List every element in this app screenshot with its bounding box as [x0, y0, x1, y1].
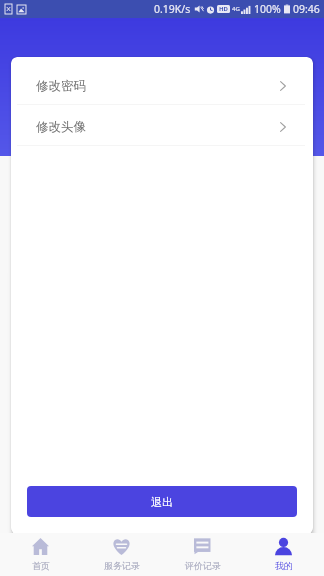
- staticText: 09:46: [293, 2, 320, 16]
- button[interactable]: 修改头像: [11, 105, 313, 145]
- staticText: 修改头像: [36, 119, 86, 135]
- button[interactable]: 修改密码: [11, 64, 313, 104]
- button[interactable]: Mine: [243, 533, 324, 576]
- staticText: HD: [219, 5, 228, 13]
- staticText: 退出: [151, 495, 173, 509]
- staticText: 4G: [232, 5, 240, 13]
- staticText: 修改密码: [36, 78, 86, 94]
- button[interactable]: 退出: [27, 486, 297, 517]
- button[interactable]: Home: [0, 533, 81, 576]
- staticText: 服务记录: [104, 560, 140, 571]
- other: Review records: [194, 538, 211, 555]
- staticText: 评价记录: [185, 560, 221, 571]
- other: Mine: [275, 538, 292, 555]
- staticText: 100%: [254, 2, 281, 16]
- staticText: 0.19K/s: [154, 2, 191, 16]
- other: Service records: [113, 538, 130, 555]
- button[interactable]: Review records: [162, 533, 243, 576]
- staticText: 我的: [275, 560, 293, 571]
- other: Home: [32, 538, 49, 555]
- staticText: 首页: [32, 560, 50, 571]
- button[interactable]: Service records: [81, 533, 162, 576]
